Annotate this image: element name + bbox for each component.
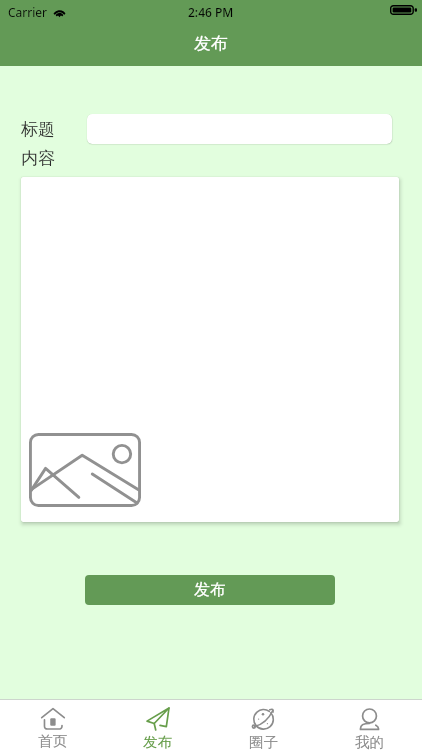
staticText: 我的 bbox=[355, 733, 384, 750]
staticText: Carrier bbox=[8, 4, 48, 20]
button[interactable]: 发布 bbox=[85, 575, 335, 605]
button[interactable]: 圈子 bbox=[210, 700, 316, 750]
staticText: 标题 bbox=[21, 119, 55, 140]
button[interactable]: 我的 bbox=[316, 700, 422, 750]
staticText: 发布 bbox=[194, 33, 228, 54]
button[interactable]: Add image bbox=[29, 433, 141, 507]
staticText: 内容 bbox=[21, 148, 55, 169]
staticText: 2:46 PM bbox=[188, 4, 234, 20]
staticText: 发布 bbox=[194, 580, 226, 600]
button[interactable]: Add image bbox=[21, 177, 399, 522]
button[interactable]: 发布 bbox=[105, 700, 210, 750]
staticText: 发布 bbox=[143, 733, 172, 750]
button[interactable]: 首页 bbox=[0, 700, 105, 750]
staticText: 圈子 bbox=[249, 733, 278, 750]
staticText: 首页 bbox=[38, 732, 67, 750]
